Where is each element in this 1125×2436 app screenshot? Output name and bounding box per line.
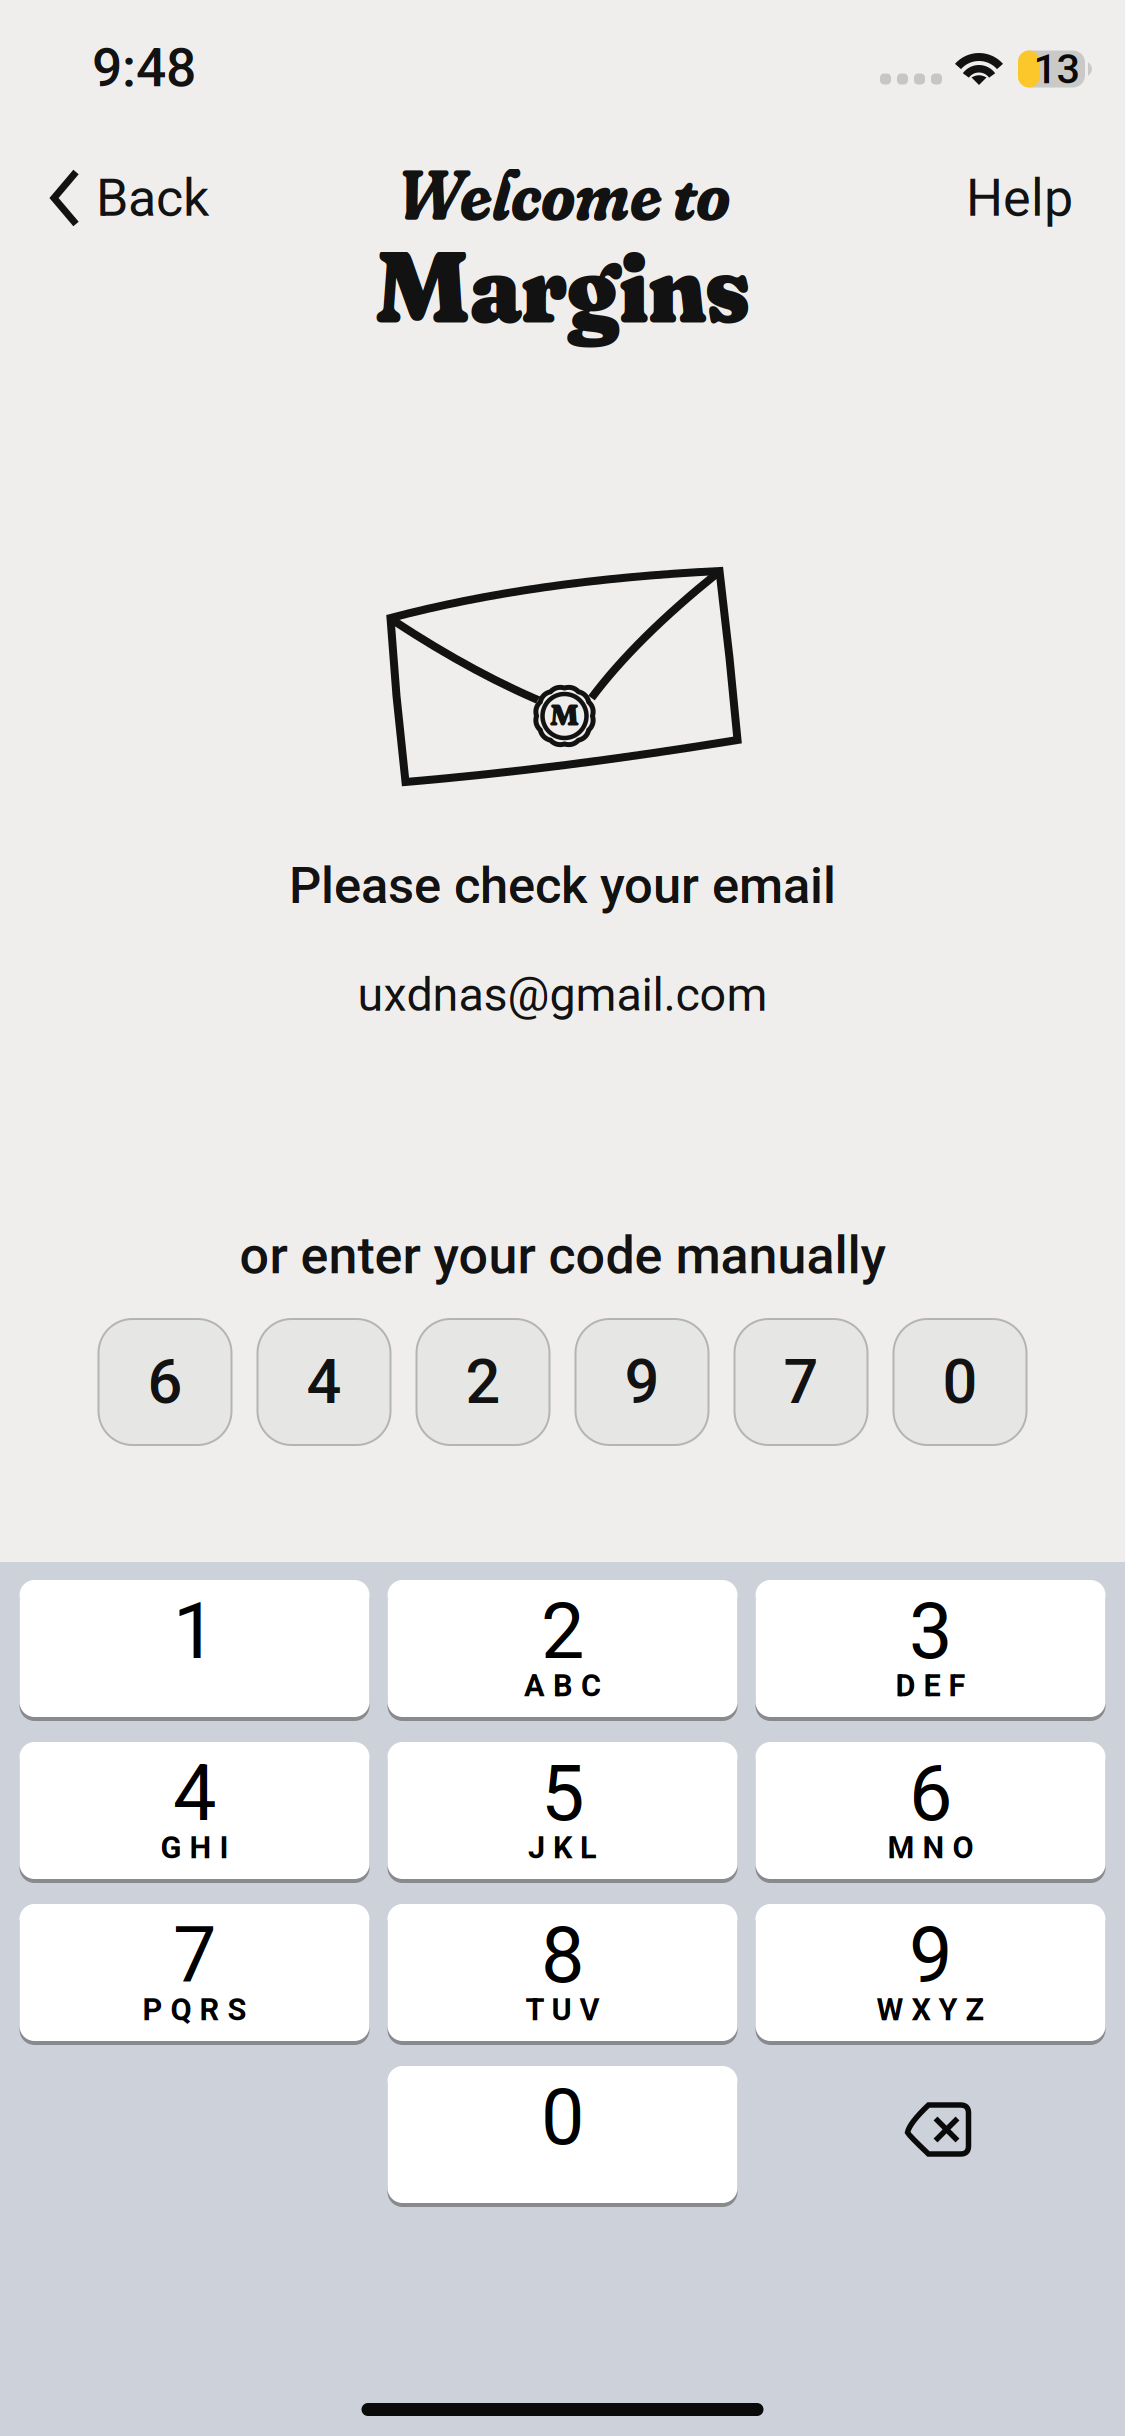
staticText: 4 (173, 1748, 216, 1839)
button[interactable]: 8 (387, 1904, 737, 2045)
staticText: 1 (173, 1586, 216, 1677)
staticText: 8 (541, 1910, 584, 2001)
staticText: 2 (465, 1346, 500, 1418)
staticText: M (549, 697, 579, 733)
staticText: G H I (160, 1830, 228, 1866)
staticText: or enter your code manually (239, 1225, 885, 1286)
staticText: 9 (909, 1910, 952, 2001)
button[interactable]: 0 (893, 1319, 1026, 1445)
button[interactable]: 1 (19, 1580, 369, 1721)
staticText: 0 (541, 2072, 584, 2163)
staticText: Please check your email (289, 856, 836, 915)
staticText: 4 (306, 1346, 341, 1418)
button[interactable]: Back (0, 150, 229, 246)
staticText: 13 (1033, 45, 1079, 93)
staticText: A B C (524, 1668, 601, 1704)
staticText: 9:48 (92, 37, 196, 99)
staticText: 2 (541, 1586, 584, 1677)
button[interactable]: 9 (755, 1904, 1105, 2045)
staticText: 7 (783, 1346, 818, 1418)
staticText: 6 (909, 1748, 952, 1839)
staticText: Back (96, 167, 209, 228)
button[interactable]: 6 (755, 1742, 1105, 1883)
staticText: 3 (909, 1586, 952, 1677)
button[interactable]: 6 (98, 1319, 231, 1445)
button[interactable]: 7 (19, 1904, 369, 2045)
button[interactable]: 7 (734, 1319, 867, 1445)
staticText: Margins (375, 223, 750, 348)
staticText: M N O (887, 1830, 973, 1866)
staticText: W X Y Z (876, 1992, 984, 2028)
button[interactable]: Delete (755, 2066, 1105, 2207)
button[interactable]: 5 (387, 1742, 737, 1883)
staticText: Welcome to (395, 152, 730, 237)
staticText: P Q R S (142, 1992, 246, 2028)
button[interactable]: 4 (257, 1319, 390, 1445)
staticText: 6 (147, 1346, 182, 1418)
staticText: T U V (525, 1992, 599, 2028)
button[interactable]: Help (946, 150, 1125, 246)
button[interactable]: 2 (416, 1319, 549, 1445)
staticText: 7 (173, 1910, 216, 2001)
button[interactable]: 2 (387, 1580, 737, 1721)
staticText: Help (966, 167, 1073, 228)
staticText: J K L (528, 1830, 597, 1866)
staticText: 5 (541, 1748, 584, 1839)
button[interactable]: 4 (19, 1742, 369, 1883)
staticText: 0 (942, 1346, 977, 1418)
button[interactable]: 3 (755, 1580, 1105, 1721)
staticText: uxdnas@gmail.com (357, 967, 767, 1022)
staticText: D E F (895, 1668, 965, 1704)
button[interactable]: 0 (387, 2066, 737, 2207)
staticText: 9 (624, 1346, 659, 1418)
button[interactable]: 9 (575, 1319, 708, 1445)
